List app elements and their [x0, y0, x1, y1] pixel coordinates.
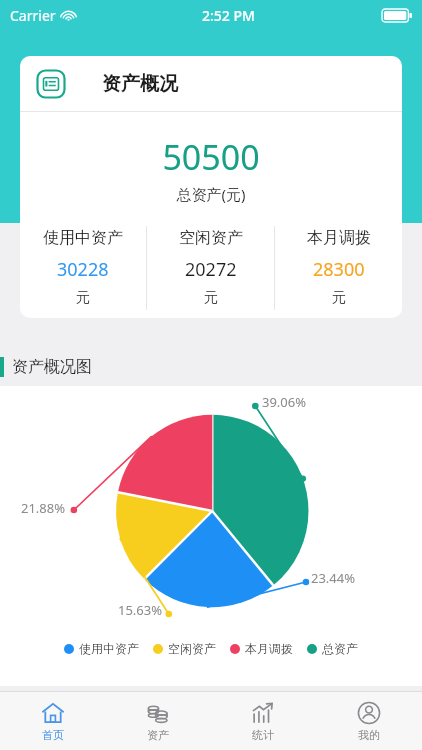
staticText: 空闲资产 — [179, 228, 243, 248]
staticText: 资产 — [147, 728, 169, 742]
staticText: 30228 — [57, 257, 109, 282]
staticText: 元 — [76, 289, 90, 307]
staticText: 总资产 — [322, 641, 358, 656]
button[interactable]: 本月调拨 — [275, 222, 402, 314]
button[interactable]: 使用中资产 — [20, 222, 146, 314]
button[interactable]: 总资产 — [307, 641, 358, 656]
staticText: 本月调拨 — [245, 641, 293, 656]
staticText: 21.88% — [21, 499, 66, 517]
staticText: 资产概况图 — [12, 357, 92, 377]
staticText: 23.44% — [311, 569, 356, 587]
staticText: 元 — [204, 289, 218, 307]
staticText: 首页 — [42, 728, 64, 742]
staticText: 本月调拨 — [307, 228, 371, 248]
button[interactable]: 空闲资产 — [147, 222, 274, 314]
staticText: 空闲资产 — [168, 641, 216, 656]
staticText: 统计 — [252, 728, 274, 742]
staticText: 使用中资产 — [43, 228, 123, 248]
button[interactable]: 我的 — [316, 692, 422, 750]
staticText: 28300 — [313, 257, 365, 282]
staticText: 50500 — [20, 134, 402, 180]
staticText: 元 — [332, 289, 346, 307]
button[interactable]: 资产 — [105, 692, 210, 750]
staticText: Carrier — [10, 6, 56, 25]
staticText: 资产概况 — [102, 72, 178, 96]
button[interactable]: 空闲资产 — [153, 641, 216, 656]
staticText: 20272 — [185, 257, 237, 282]
staticText: 39.06% — [262, 393, 307, 411]
button[interactable]: 首页 — [0, 692, 105, 750]
button[interactable]: 本月调拨 — [230, 641, 293, 656]
staticText: 我的 — [358, 728, 380, 742]
staticText: 总资产(元) — [20, 184, 402, 204]
staticText: 使用中资产 — [79, 641, 139, 656]
button[interactable]: 资产概况 — [20, 56, 402, 318]
staticText: 15.63% — [118, 601, 163, 619]
button[interactable]: 使用中资产 — [64, 641, 139, 656]
staticText: 2:52 PM — [202, 6, 255, 25]
button[interactable]: 统计 — [210, 692, 316, 750]
